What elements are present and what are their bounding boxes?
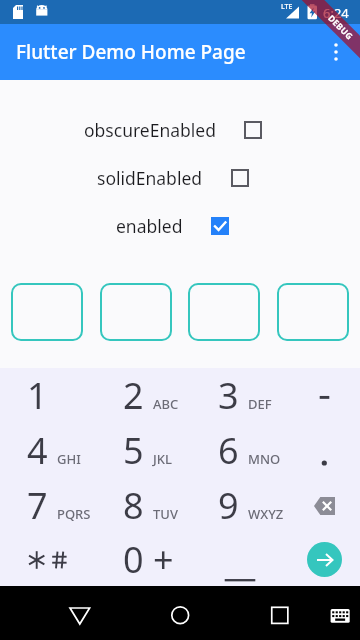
button[interactable]: [188, 283, 260, 341]
staticText: GHI: [57, 450, 81, 468]
button[interactable]: 3: [192, 368, 289, 423]
button[interactable]: [289, 368, 360, 423]
staticText: enabled: [116, 214, 183, 238]
staticText: PQRS: [57, 505, 91, 523]
button[interactable]: Switch keyboard: [318, 586, 360, 628]
staticText: obscureEnabled: [84, 118, 216, 142]
button[interactable]: Recents: [258, 586, 302, 630]
button[interactable]: 7: [0, 478, 96, 533]
button[interactable]: solidEnabled: [216, 154, 264, 202]
staticText: 2: [123, 371, 144, 420]
button[interactable]: 9: [192, 478, 289, 533]
button[interactable]: 8: [96, 478, 192, 533]
button[interactable]: More options: [312, 28, 360, 76]
button[interactable]: obscureEnabled: [229, 106, 277, 154]
staticText: LTE: [281, 2, 293, 12]
staticText: 6:24: [323, 4, 349, 22]
staticText: TUV: [153, 505, 178, 523]
staticText: 0: [123, 535, 144, 584]
button[interactable]: star and hash: [0, 533, 96, 586]
staticText: 3: [218, 371, 239, 420]
staticText: +: [153, 535, 174, 584]
button[interactable]: 5: [96, 423, 192, 478]
staticText: 6: [218, 426, 239, 475]
staticText: MNO: [248, 450, 281, 468]
button[interactable]: [100, 283, 172, 341]
button[interactable]: Back: [58, 586, 102, 630]
button[interactable]: Go: [307, 542, 342, 577]
button[interactable]: [277, 283, 349, 341]
staticText: 5: [123, 426, 144, 475]
button[interactable]: Home: [158, 586, 202, 630]
button[interactable]: [11, 283, 83, 341]
staticText: 4: [27, 426, 48, 475]
staticText: 1: [27, 371, 48, 420]
staticText: 7: [27, 481, 48, 530]
button[interactable]: 4: [0, 423, 96, 478]
staticText: 9: [218, 481, 239, 530]
button[interactable]: Go: [289, 533, 360, 586]
button[interactable]: underscore: [192, 533, 289, 586]
other: Backspace: [314, 497, 335, 515]
button[interactable]: enabled: [196, 202, 244, 250]
staticText: solidEnabled: [97, 166, 203, 190]
staticText: 8: [123, 481, 144, 530]
button[interactable]: 6: [192, 423, 289, 478]
staticText: DEBUG: [325, 12, 356, 43]
button[interactable]: 1: [0, 368, 96, 423]
button[interactable]: 2: [96, 368, 192, 423]
button[interactable]: 0: [96, 533, 192, 586]
staticText: ABC: [153, 395, 179, 413]
button[interactable]: Backspace: [289, 478, 360, 533]
staticText: DEF: [248, 395, 272, 413]
button[interactable]: [289, 423, 360, 478]
staticText: JKL: [153, 450, 172, 468]
staticText: Flutter Demo Home Page: [16, 39, 246, 65]
staticText: WXYZ: [248, 505, 284, 523]
